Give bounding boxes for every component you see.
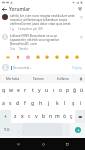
button[interactable]: Emoji [75,55,79,59]
staticText: q [2,87,6,94]
staticText: ğ [73,87,77,94]
button[interactable]: Like [78,14,84,20]
button[interactable]: Emoji [36,55,40,59]
staticText: ?123 [4,128,10,131]
button[interactable]: w [8,83,15,97]
button[interactable]: Yorum ekle... [11,61,71,74]
staticText: u [45,87,49,94]
staticText: k [56,100,59,107]
button[interactable]: Emoji [45,55,49,59]
button[interactable]: ?123 [0,123,14,136]
button[interactable]: ö [61,110,68,123]
button[interactable]: q [0,83,8,97]
staticText: ş [72,100,75,107]
button[interactable]: l [61,97,69,110]
button[interactable]: z [11,110,19,123]
staticText: f [24,100,26,107]
staticText: i [80,100,82,107]
staticText: ü [80,87,84,94]
button[interactable]: Fire emoji [16,55,20,59]
button[interactable]: Sort comments [75,5,85,13]
button[interactable]: Voice input [76,74,85,83]
button[interactable]: Merhaba [0,74,26,83]
button[interactable]: ç [68,110,75,123]
staticText: c [28,113,31,120]
button[interactable]: j [45,97,53,110]
button[interactable]: n [47,110,54,123]
button[interactable]: d [14,97,21,110]
button[interactable]: sahibi_bir_isim nunc magna vestibulum an… [0,14,85,31]
button[interactable]: k [53,97,61,110]
button[interactable]: ü [78,83,85,97]
button[interactable]: c [26,110,33,123]
button[interactable]: , [14,123,22,136]
button[interactable]: v [33,110,40,123]
button[interactable]: e [15,83,22,97]
button[interactable]: b [40,110,47,123]
button[interactable]: ğ [71,83,78,97]
button[interactable]: m [54,110,61,123]
staticText: j [48,100,50,107]
button[interactable]: Tamam [26,74,51,83]
button[interactable]: ı [50,83,57,97]
button[interactable]: p [64,83,71,97]
staticText: m [55,113,60,120]
staticText: , [18,128,19,132]
button[interactable]: r [22,83,29,97]
button[interactable]: g [29,97,37,110]
staticText: 1 g Cevaplarını gör (28) [10,27,43,31]
staticText: x [21,113,24,120]
button[interactable]: s [7,97,14,110]
staticText: Merhaba [6,77,20,81]
button[interactable]: kullanici9999 Bonushost ve ucuz kapasite… [0,34,85,51]
staticText: y [38,87,41,94]
button[interactable]: t [29,83,36,97]
staticText: kullanici9999 Bonushost ve ucuz kapasite… [10,34,60,46]
staticText: ı [53,87,55,94]
button[interactable]: Emoji [55,55,59,59]
button[interactable]: x [19,110,26,123]
staticText: e [17,87,20,94]
staticText: g [31,100,35,107]
staticText: ö [63,113,67,120]
button[interactable]: f [21,97,29,110]
staticText: s [9,100,12,107]
button[interactable]: i [77,97,85,110]
button[interactable]: u [43,83,50,97]
button[interactable]: Back [12,138,24,150]
staticText: n [49,113,53,120]
button[interactable]: Shift [0,110,11,123]
button[interactable]: Home [37,138,49,150]
staticText: h [39,100,43,107]
staticText: r [24,87,27,94]
staticText: t [32,87,34,94]
button[interactable]: Like [78,34,84,40]
staticText: . [66,128,67,132]
staticText: v [35,113,38,120]
button[interactable]: Emoji [65,55,69,59]
button[interactable]: a [0,97,7,110]
button[interactable]: ş [69,97,77,110]
button[interactable]: Backspace [75,110,85,123]
button[interactable]: Crown emoji [6,55,10,59]
staticText: Yorumlar [9,6,31,13]
staticText: o [59,87,63,94]
button[interactable]: h [37,97,45,110]
staticText: 3 sa Yanıtla [10,47,28,51]
staticText: p [66,87,70,94]
staticText: a [2,100,5,107]
staticText: w [9,87,14,94]
button[interactable]: Recent apps [61,138,73,150]
staticText: d [16,100,20,107]
button[interactable]: Send [75,127,81,133]
staticText: Tamam [33,77,44,81]
button[interactable]: Paylaş [71,66,83,70]
button[interactable]: o [57,83,64,97]
button[interactable]: Kullanıcı [51,74,76,83]
button[interactable]: Flower emoji [26,55,30,59]
button[interactable]: Back [0,5,9,13]
button[interactable]: y [36,83,43,97]
staticText: Paylaş [72,66,82,70]
